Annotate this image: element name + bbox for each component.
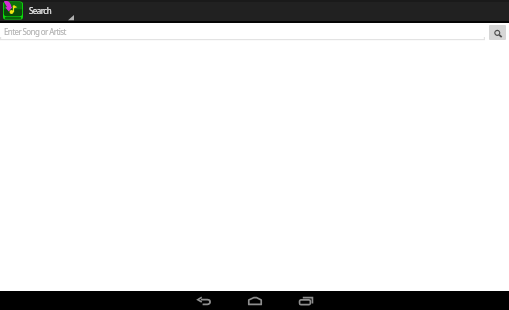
button[interactable]: Enter Song or Artist [0,23,486,41]
button[interactable]: Home [229,291,280,310]
button[interactable]: Recent apps [280,291,331,310]
button[interactable]: Search [23,0,75,21]
button[interactable]: App icon, navigate up [3,1,23,20]
staticText: Enter Song or Artist [4,26,66,37]
button[interactable]: Search [489,25,506,40]
staticText: Search [29,5,52,16]
button[interactable]: Back [178,291,229,310]
